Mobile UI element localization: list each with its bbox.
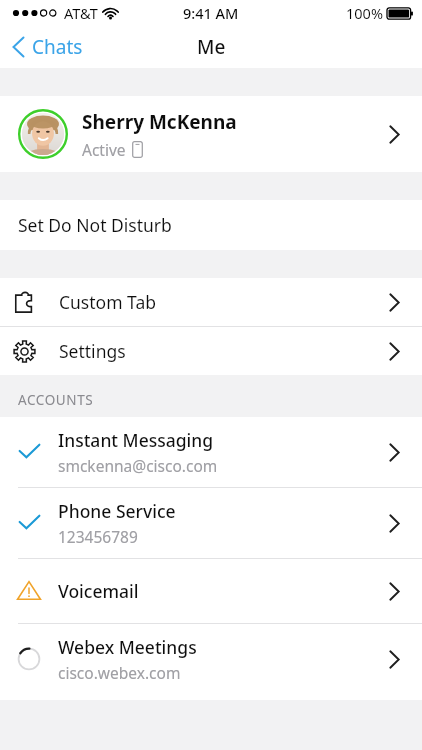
- button[interactable]: Voicemail: [0, 559, 422, 623]
- button[interactable]: Webex Meetings: [0, 624, 422, 694]
- staticText: smckenna@cisco.com: [58, 455, 218, 476]
- staticText: Chats: [32, 34, 83, 60]
- staticText: Phone Service: [58, 499, 176, 523]
- staticText: 100%: [346, 3, 383, 23]
- button[interactable]: Settings: [0, 327, 422, 375]
- staticText: 123456789: [58, 526, 138, 547]
- staticText: Me: [197, 34, 226, 60]
- button[interactable]: Instant Messaging: [0, 417, 422, 487]
- button[interactable]: Set Do Not Disturb: [0, 200, 422, 250]
- staticText: ACCOUNTS: [18, 391, 94, 409]
- staticText: Instant Messaging: [58, 428, 214, 452]
- button[interactable]: Phone Service: [0, 488, 422, 558]
- staticText: AT&T: [64, 3, 98, 23]
- button[interactable]: Sherry McKenna: [0, 96, 422, 172]
- staticText: Active: [82, 139, 126, 160]
- staticText: Voicemail: [58, 579, 139, 603]
- staticText: 9:41 AM: [183, 3, 239, 23]
- button[interactable]: Custom Tab: [0, 278, 422, 326]
- staticText: Sherry McKenna: [82, 109, 237, 135]
- staticText: Settings: [59, 339, 126, 363]
- staticText: Custom Tab: [59, 290, 156, 314]
- staticText: cisco.webex.com: [58, 662, 181, 683]
- button[interactable]: Chats: [0, 30, 93, 64]
- staticText: Set Do Not Disturb: [18, 213, 172, 237]
- staticText: Webex Meetings: [58, 635, 197, 659]
